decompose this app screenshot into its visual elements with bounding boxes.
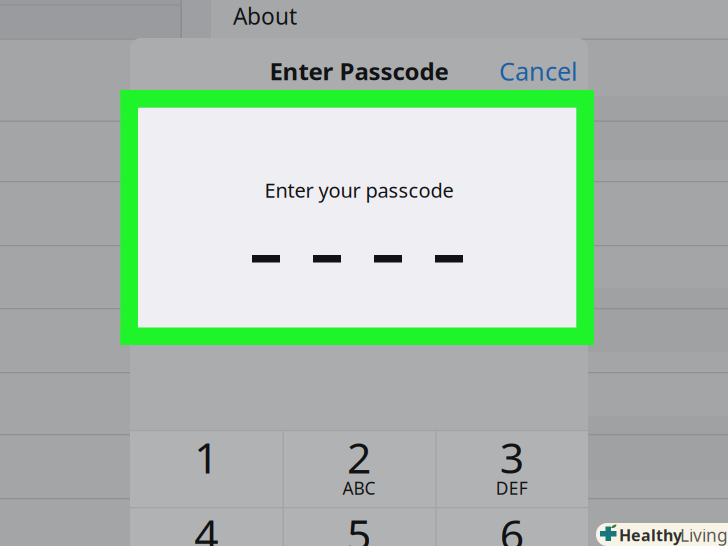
staticText: Living — [680, 523, 728, 546]
button[interactable]: 5 — [0, 0, 728, 546]
button[interactable]: 4 — [0, 0, 728, 546]
staticText: ABC — [342, 476, 375, 499]
button[interactable]: About — [0, 0, 728, 546]
button[interactable]: 2 — [0, 0, 728, 546]
button[interactable]: 6 — [0, 0, 728, 546]
staticText: 4 — [194, 506, 218, 546]
staticText: Enter Passcode — [269, 55, 448, 87]
staticText: Healthy — [619, 524, 682, 546]
staticText: Enter your passcode — [264, 177, 453, 203]
staticText: 3 — [500, 429, 524, 485]
staticText: About — [233, 1, 297, 31]
staticText: DEF — [496, 476, 528, 499]
staticText: 5 — [347, 506, 371, 546]
button[interactable]: 1 — [0, 0, 728, 546]
button[interactable]: 3 — [0, 0, 728, 546]
staticText: Cancel — [499, 54, 578, 88]
button[interactable]: Cancel — [0, 0, 728, 546]
staticText: 2 — [347, 429, 371, 485]
staticText: 1 — [194, 429, 218, 485]
staticText: 6 — [500, 506, 524, 546]
